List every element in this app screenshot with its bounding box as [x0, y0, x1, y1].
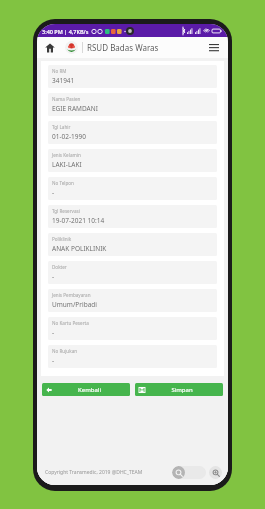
staticText: 3:40 PM | 4,7KB/s	[42, 28, 89, 35]
button[interactable]: Jenis Kelamin	[48, 149, 217, 172]
button[interactable]: Dokter	[48, 261, 217, 284]
button[interactable]: Nama Pasien	[48, 93, 217, 116]
button[interactable]: Zoom in	[209, 466, 222, 479]
button[interactable]: No Kartu Peserta	[48, 317, 217, 340]
staticText: No Rujukan	[52, 348, 78, 354]
button[interactable]: Simpan	[135, 383, 223, 396]
staticText: Copyright Transmedic, 2019 @DHC_TEAM	[45, 469, 143, 476]
button[interactable]: No Telpon	[48, 177, 217, 200]
staticText: Simpan	[171, 386, 193, 394]
staticText: No Kartu Peserta	[52, 320, 89, 326]
button[interactable]: Zoom out	[172, 466, 206, 479]
staticText: -	[52, 328, 55, 337]
staticText: -	[52, 188, 55, 197]
staticText: No Telpon	[52, 180, 74, 186]
button[interactable]: No RM	[48, 65, 217, 88]
button[interactable]: Menu	[206, 40, 222, 56]
staticText: Umum/Pribadi	[52, 300, 97, 309]
button[interactable]: Tgl Lahir	[48, 121, 217, 144]
button[interactable]: Poliklinik	[48, 233, 217, 256]
button[interactable]: Tgl Reservasi	[48, 205, 217, 228]
staticText: EGIE RAMDANI	[52, 104, 98, 113]
staticText: 341941	[52, 76, 75, 85]
staticText: Dokter	[52, 264, 67, 270]
staticText: Kembali	[78, 386, 101, 394]
staticText: Tgl Lahir	[52, 124, 71, 130]
button[interactable]: Jenis Pembayaran	[48, 289, 217, 312]
staticText: Nama Pasien	[52, 96, 81, 102]
staticText: -	[52, 356, 55, 365]
staticText: Tgl Reservasi	[52, 208, 80, 214]
button[interactable]: Home	[43, 41, 57, 55]
staticText: -	[52, 272, 55, 281]
button[interactable]: Kembali	[42, 383, 130, 396]
staticText: Jenis Pembayaran	[52, 292, 91, 298]
staticText: Jenis Kelamin	[52, 152, 81, 158]
button[interactable]: No Rujukan	[48, 345, 217, 368]
staticText: No RM	[52, 68, 67, 74]
staticText: ANAK POLIKLINIK	[52, 244, 107, 253]
staticText: 01-02-1990	[52, 132, 86, 141]
staticText: LAKI-LAKI	[52, 160, 82, 169]
staticText: 19-07-2021 10:14	[52, 216, 105, 225]
staticText: RSUD Badas Waras	[87, 42, 159, 53]
staticText: Poliklinik	[52, 236, 72, 242]
